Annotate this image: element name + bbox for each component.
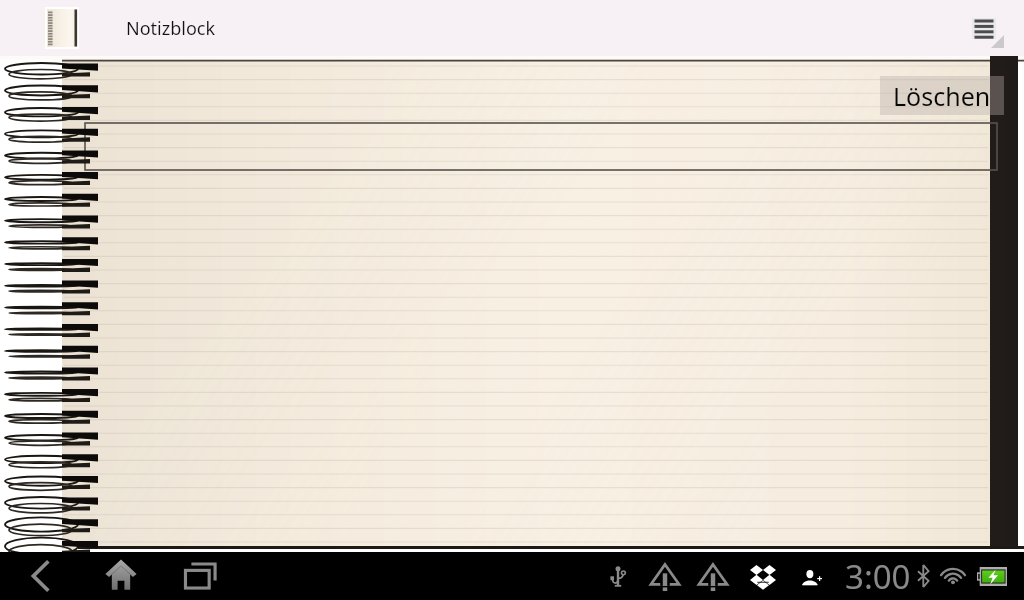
- staticText: Löschen: [893, 79, 991, 113]
- button[interactable]: More options: [968, 0, 1024, 56]
- button[interactable]: Recents: [174, 552, 231, 600]
- button[interactable]: Home: [94, 552, 148, 600]
- button[interactable]: Back: [19, 552, 61, 600]
- staticText: Notizblock: [126, 16, 216, 41]
- button[interactable]: Löschen: [880, 76, 1004, 115]
- staticText: 3:00: [845, 554, 911, 599]
